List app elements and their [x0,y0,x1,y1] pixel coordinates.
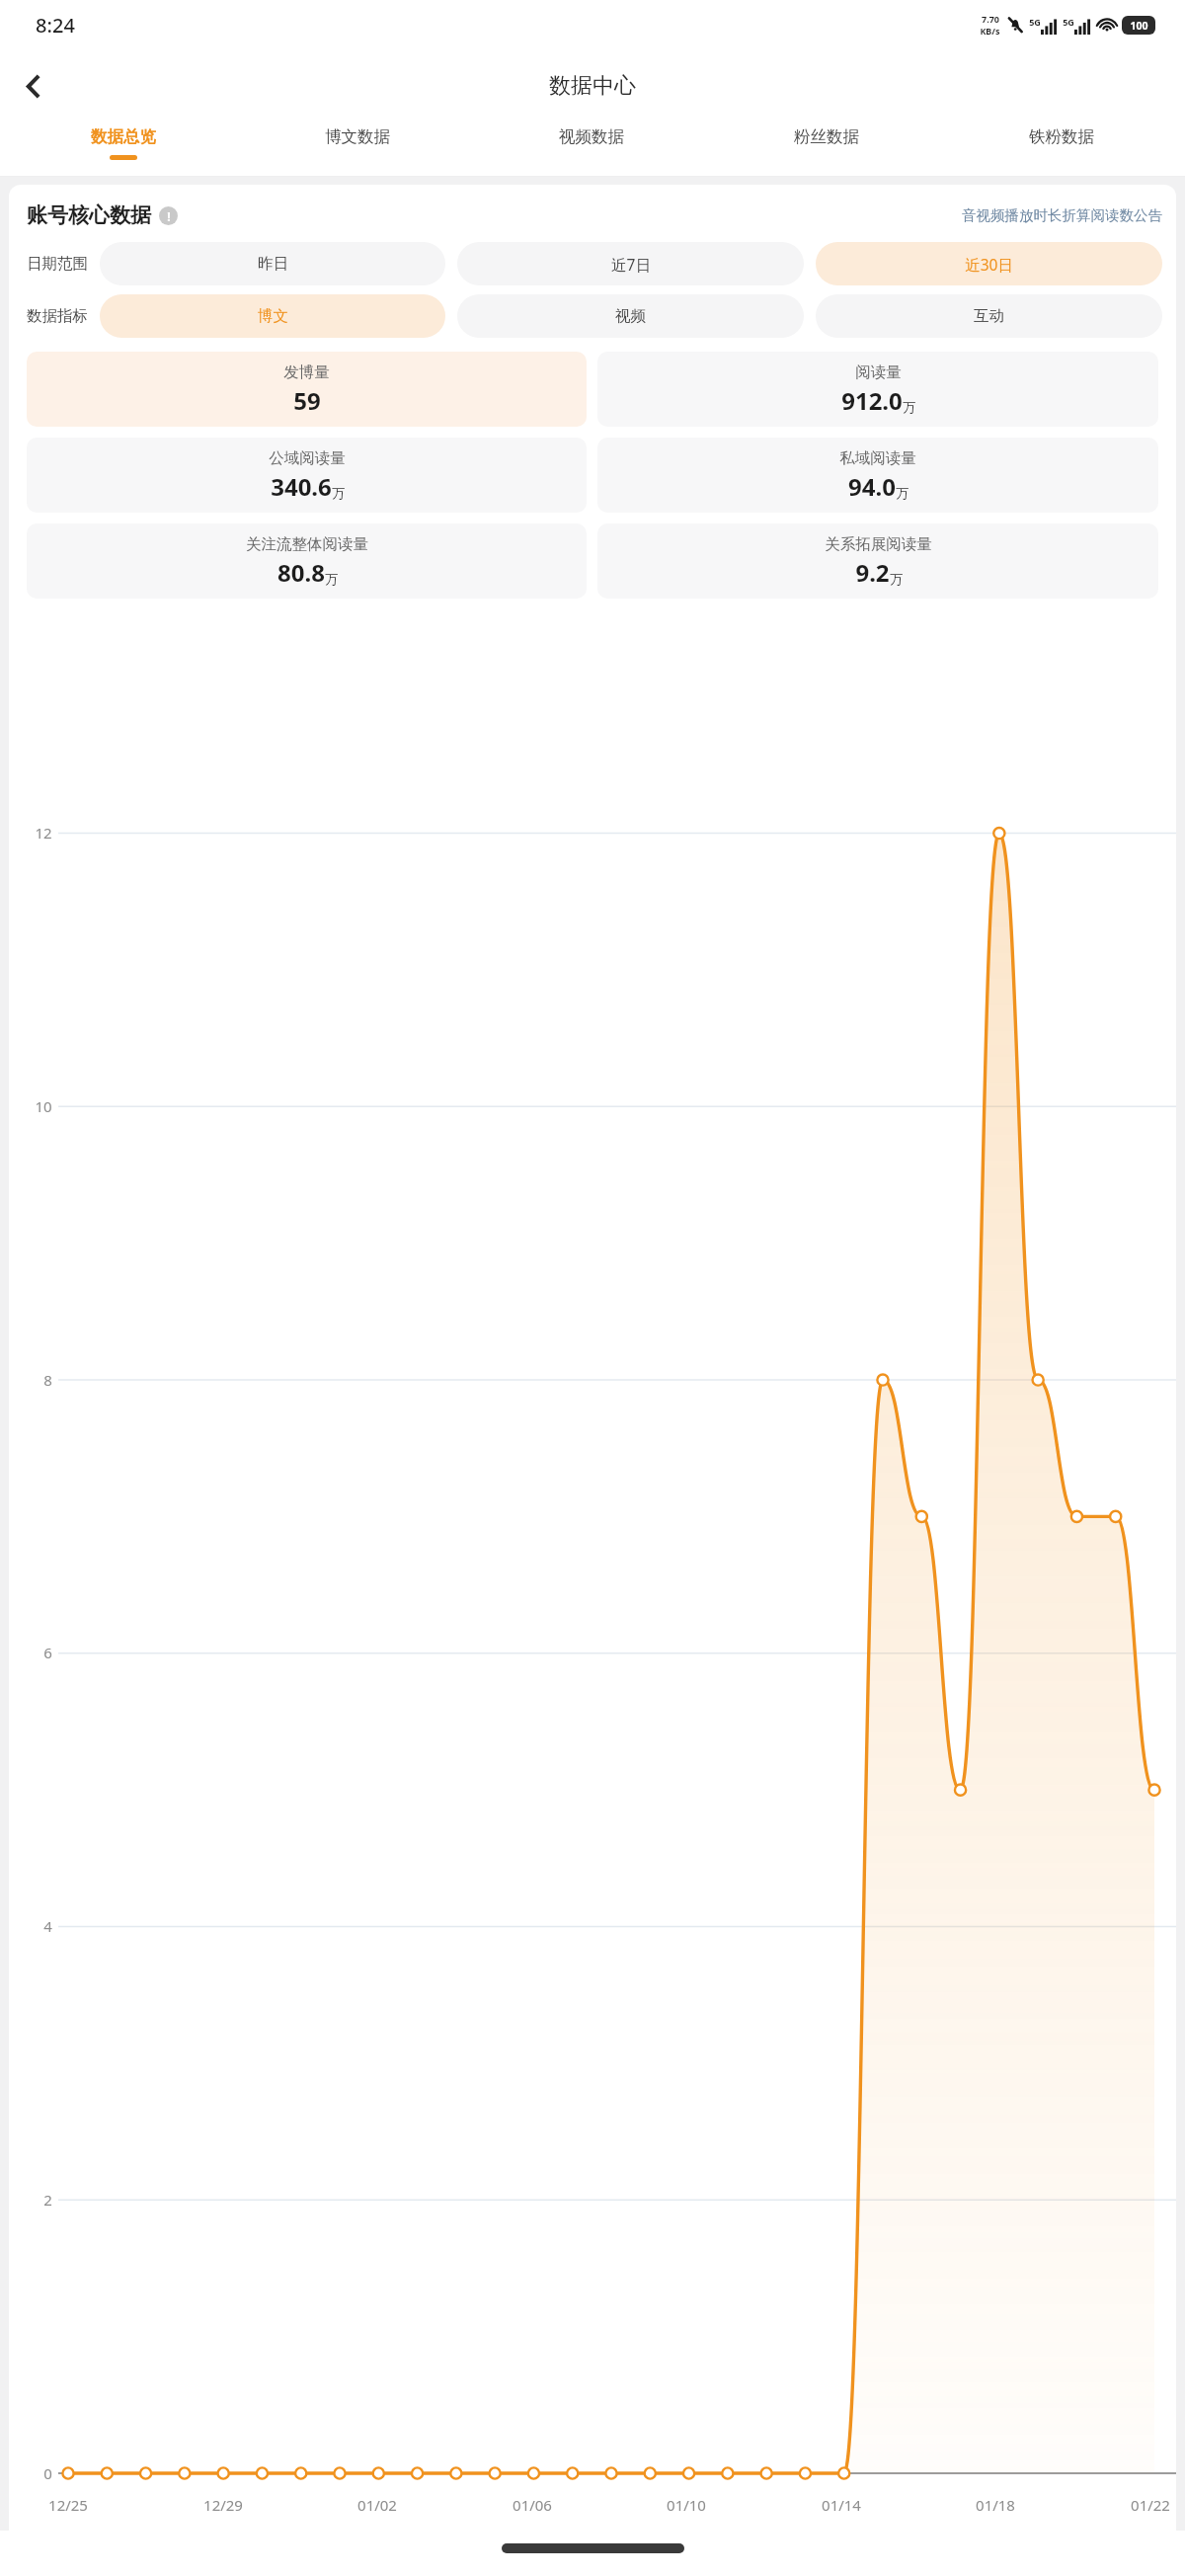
staticText: 01/18 [976,2495,1015,2515]
staticText: 数据总览 [91,126,156,147]
staticText: 关系拓展阅读量 [825,534,932,554]
button[interactable]: 近7日 [457,242,804,285]
button[interactable]: 近30日 [816,242,1162,285]
staticText: 公域阅读量 [269,448,346,468]
staticText: 互动 [974,306,1004,326]
button[interactable]: 公域阅读量 [27,438,587,513]
staticText: 万 [890,571,903,587]
button[interactable]: 铁粉数据 [944,122,1179,176]
staticText: 12 [35,823,52,843]
staticText: 近7日 [611,254,651,275]
staticText: 01/06 [513,2495,552,2515]
staticText: 12/25 [48,2495,88,2515]
button[interactable]: 关系拓展阅读量 [597,523,1158,599]
staticText: 发博量 [283,362,330,382]
staticText: 粉丝数据 [794,126,859,147]
staticText: KB/s [980,25,1000,37]
staticText: 视频数据 [559,126,624,147]
staticText: 关注流整体阅读量 [246,534,368,554]
button[interactable]: 关注流整体阅读量 [27,523,587,599]
staticText: 账号核心数据 [27,202,151,228]
staticText: 5G [1029,16,1041,28]
staticText: 近30日 [965,254,1013,275]
staticText: 4 [43,1916,52,1936]
staticText: 2 [43,2190,52,2210]
staticText: 340.6 [271,470,332,503]
staticText: 100 [1130,19,1148,33]
button[interactable]: 数据总览 [6,122,240,176]
staticText: 8 [43,1370,52,1390]
staticText: ! [167,208,171,224]
staticText: 01/14 [822,2495,861,2515]
staticText: 万 [903,399,915,415]
staticText: 9.2 [855,556,890,589]
button[interactable]: 昨日 [100,242,445,285]
staticText: 数据指标 [27,306,88,326]
staticText: 912.0 [841,384,903,417]
staticText: 阅读量 [855,362,902,382]
staticText: 私域阅读量 [839,448,916,468]
staticText: 万 [896,485,908,501]
button[interactable]: 粉丝数据 [709,122,944,176]
staticText: 0 [43,2463,52,2483]
staticText: 80.8 [277,556,325,589]
staticText: 10 [35,1096,52,1116]
staticText: 01/22 [1131,2495,1170,2515]
staticText: 日期范围 [27,254,88,274]
button[interactable]: Info [159,206,178,225]
button[interactable]: 互动 [816,294,1162,338]
staticText: 12/29 [203,2495,243,2515]
button[interactable]: 视频 [457,294,804,338]
button[interactable]: Back [10,62,57,110]
button[interactable]: 视频数据 [474,122,709,176]
staticText: 铁粉数据 [1029,126,1094,147]
staticText: 7.70 [982,13,999,25]
staticText: 博文数据 [325,126,390,147]
button[interactable]: 发博量 [27,352,587,427]
staticText: 视频 [615,306,646,326]
staticText: 博文 [258,306,288,326]
staticText: 5G [1063,16,1074,28]
button[interactable]: 博文数据 [240,122,474,176]
button[interactable]: 音视频播放时长折算阅读数公告 [962,206,1162,224]
staticText: 59 [293,384,321,417]
staticText: 94.0 [848,470,896,503]
button[interactable]: 博文 [100,294,445,338]
staticText: 01/02 [357,2495,397,2515]
staticText: 数据中心 [549,72,636,100]
staticText: 昨日 [258,254,288,274]
staticText: 01/10 [667,2495,706,2515]
button[interactable]: 私域阅读量 [597,438,1158,513]
staticText: 音视频播放时长折算阅读数公告 [962,206,1162,224]
button[interactable]: 阅读量 [597,352,1158,427]
staticText: 8:24 [36,12,75,39]
staticText: 万 [332,485,345,501]
staticText: 6 [43,1643,52,1662]
staticText: 万 [325,571,338,587]
